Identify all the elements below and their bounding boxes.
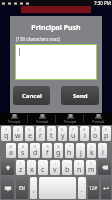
button[interactable]: . — [78, 177, 86, 199]
button[interactable]: ? — [86, 160, 96, 175]
staticText: $ — [34, 144, 37, 149]
staticText: 9 — [94, 127, 97, 132]
staticText: ( — [102, 144, 104, 149]
staticText: l — [102, 148, 104, 158]
button[interactable]: Principal — [84, 113, 112, 125]
staticText: & — [57, 144, 60, 149]
staticText: 8 — [83, 127, 86, 132]
staticText: ' — [43, 161, 44, 166]
button[interactable]: 8 — [80, 126, 89, 141]
staticText: j — [80, 148, 82, 158]
staticText: . — [81, 185, 83, 195]
staticText: 12# — [89, 185, 98, 191]
staticText: - — [80, 144, 82, 149]
staticText: s — [21, 148, 25, 158]
button[interactable]: Switch keyboard — [1, 177, 14, 199]
staticText: 4 — [39, 127, 42, 132]
staticText: m — [88, 165, 95, 175]
staticText: EN — [19, 185, 25, 191]
staticText: ! — [20, 161, 21, 166]
button[interactable]: 0 — [102, 126, 111, 141]
staticText: 2 — [17, 127, 20, 132]
button[interactable]: " — [27, 160, 36, 175]
staticText: q — [4, 131, 9, 141]
button[interactable]: 5 — [47, 126, 56, 141]
staticText: v — [53, 165, 57, 175]
button[interactable] — [39, 177, 76, 199]
staticText: z — [19, 165, 23, 175]
staticText: Principal — [64, 120, 77, 124]
button[interactable]: , — [30, 177, 37, 199]
button[interactable]: ; — [62, 160, 72, 175]
button[interactable]: 7 — [69, 126, 78, 141]
staticText: 7 — [72, 127, 75, 132]
staticText: Principal — [36, 120, 49, 124]
staticText: Principal — [8, 120, 21, 124]
button[interactable]: 9 — [91, 126, 100, 141]
button[interactable]: 1 — [1, 126, 11, 141]
button[interactable]: 2 — [13, 126, 23, 141]
button[interactable]: ( — [98, 143, 107, 158]
staticText: ? — [90, 161, 92, 166]
staticText: w — [15, 131, 21, 141]
button[interactable]: * — [65, 143, 74, 158]
staticText: a — [9, 148, 13, 158]
button[interactable]: Principal — [0, 113, 28, 125]
staticText: 0 — [105, 127, 108, 132]
staticText: Principal Push — [10, 23, 102, 33]
button[interactable]: & — [54, 143, 63, 158]
button[interactable]: @ — [6, 143, 16, 158]
staticText: g — [56, 148, 61, 158]
staticText: Cancel — [22, 92, 42, 100]
button[interactable]: ' — [38, 160, 48, 175]
staticText: : — [55, 161, 56, 166]
staticText: 5 — [50, 127, 53, 132]
staticText: r — [39, 131, 42, 141]
button[interactable]: ! — [16, 160, 25, 175]
staticText: i — [84, 131, 86, 141]
staticText: o — [93, 131, 98, 141]
staticText: Send — [73, 92, 88, 100]
button[interactable]: # — [18, 143, 28, 158]
staticText: d — [33, 148, 38, 158]
button[interactable]: 6 — [58, 126, 67, 141]
staticText: 1 — [5, 127, 8, 132]
button[interactable]: Backspace — [98, 160, 111, 175]
button[interactable]: Send — [61, 86, 99, 105]
button[interactable]: Principal — [28, 113, 56, 125]
button[interactable]: : — [50, 160, 60, 175]
staticText: # — [22, 144, 25, 149]
button[interactable]: Principal — [56, 113, 84, 125]
staticText: " — [31, 161, 33, 166]
staticText: 3 — [28, 127, 31, 132]
staticText: h — [67, 148, 72, 158]
button[interactable]: Language EN — [16, 177, 28, 199]
staticText: / — [78, 161, 80, 166]
button[interactable]: - — [76, 143, 85, 158]
staticText: b — [65, 165, 70, 175]
button[interactable]: Numbers and symbols — [88, 177, 99, 199]
button[interactable]: $ — [30, 143, 40, 158]
button[interactable]: Cancel — [13, 86, 50, 105]
button[interactable]: % — [42, 143, 52, 158]
staticText: + — [90, 144, 93, 149]
staticText: % — [46, 144, 49, 149]
staticText: t — [50, 131, 53, 141]
staticText: n — [77, 165, 82, 175]
button[interactable]: Shift — [1, 160, 14, 175]
staticText: x — [30, 165, 34, 175]
staticText: 6 — [61, 127, 64, 132]
staticText: @ — [9, 144, 13, 149]
button[interactable]: / — [74, 160, 84, 175]
button[interactable]: 3 — [25, 126, 34, 141]
button[interactable]: Enter — [101, 177, 111, 199]
staticText: f — [46, 148, 49, 158]
button[interactable]: + — [87, 143, 96, 158]
button[interactable]: 4 — [36, 126, 45, 141]
staticText: y — [61, 131, 65, 141]
staticText: Principal — [92, 120, 105, 124]
staticText: ; — [67, 161, 68, 166]
staticText: k — [90, 148, 94, 158]
staticText: e — [28, 131, 32, 141]
staticText: u — [71, 131, 76, 141]
